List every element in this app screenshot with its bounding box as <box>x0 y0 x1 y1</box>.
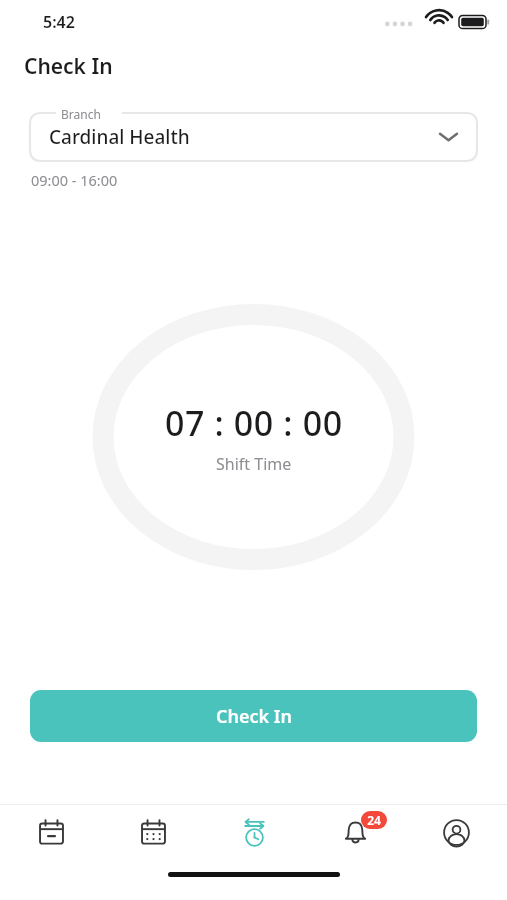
button[interactable]: Check In <box>30 690 477 742</box>
button[interactable]: Calendar <box>102 805 204 859</box>
button[interactable]: Schedule <box>0 805 102 859</box>
button[interactable]: Shift swap <box>204 805 305 859</box>
staticText: 24 <box>367 812 381 828</box>
staticText: Check In <box>24 52 113 81</box>
staticText: 07 : 00 : 00 <box>165 400 343 446</box>
staticText: 5:42 <box>43 11 75 33</box>
staticText: Branch <box>61 106 101 122</box>
staticText: 09:00 - 16:00 <box>31 170 118 190</box>
button[interactable]: Branch <box>30 113 477 161</box>
staticText: Shift Time <box>216 453 292 475</box>
button[interactable]: Profile <box>406 805 507 859</box>
staticText: Check In <box>216 704 292 729</box>
button[interactable]: Notifications <box>305 805 406 859</box>
staticText: Cardinal Health <box>49 124 190 150</box>
